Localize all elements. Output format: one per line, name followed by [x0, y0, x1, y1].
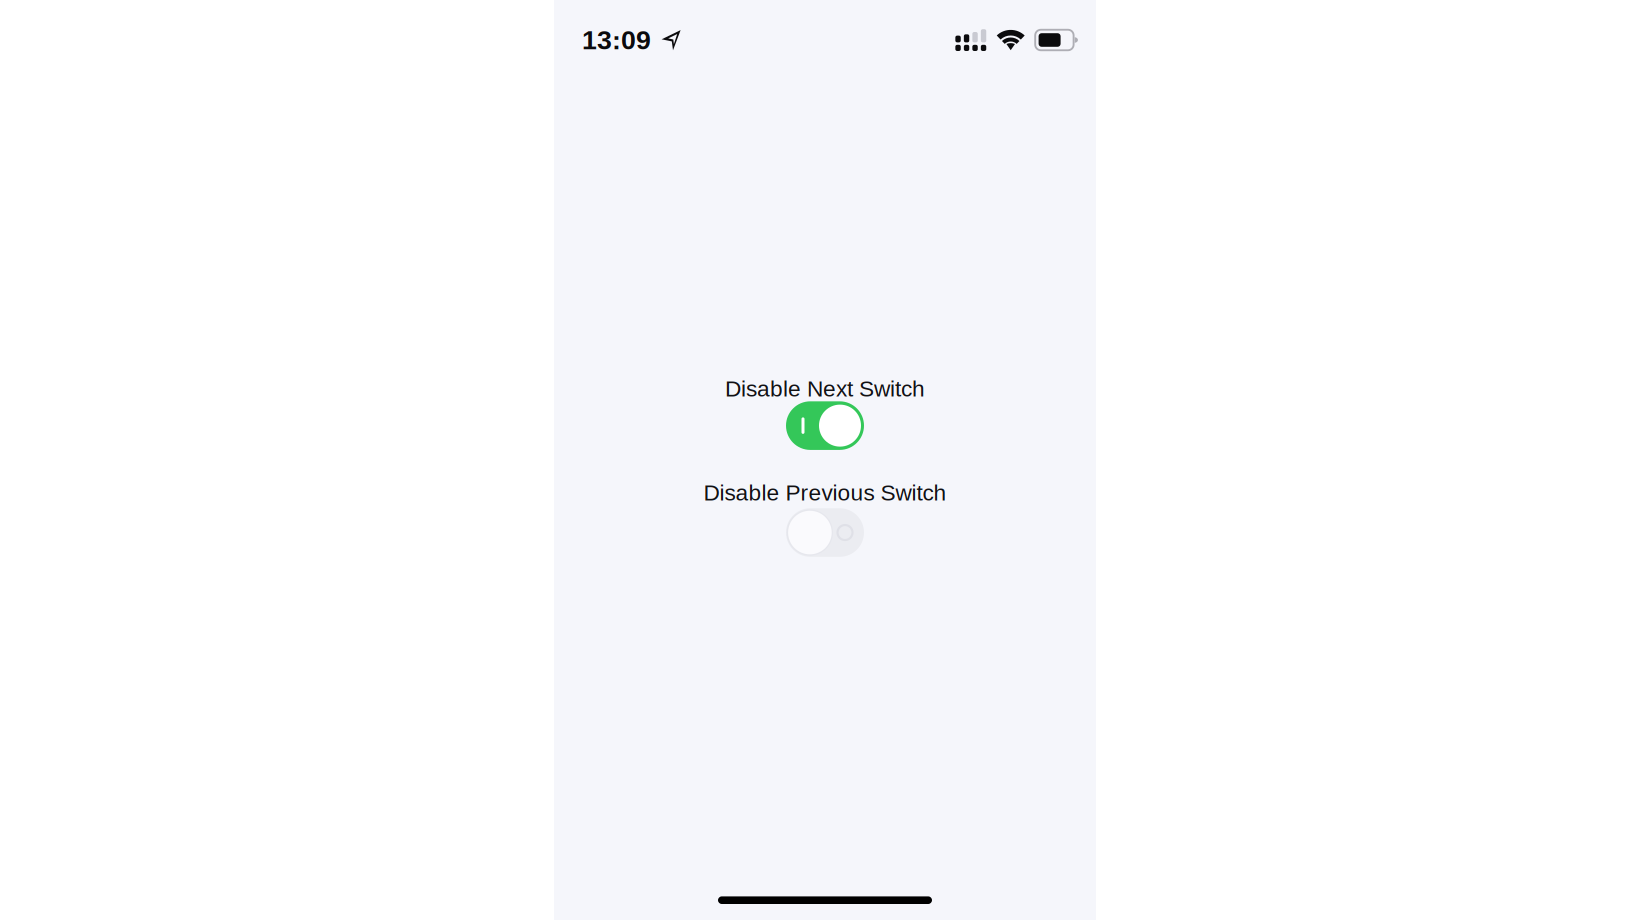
button[interactable]: Disable Next Switch, on — [786, 401, 864, 450]
staticText: Disable Next Switch — [725, 376, 925, 401]
staticText: Disable Previous Switch — [703, 480, 946, 505]
button[interactable]: Disable Previous Switch, off — [786, 508, 864, 557]
staticText: 13:09 — [582, 25, 651, 55]
